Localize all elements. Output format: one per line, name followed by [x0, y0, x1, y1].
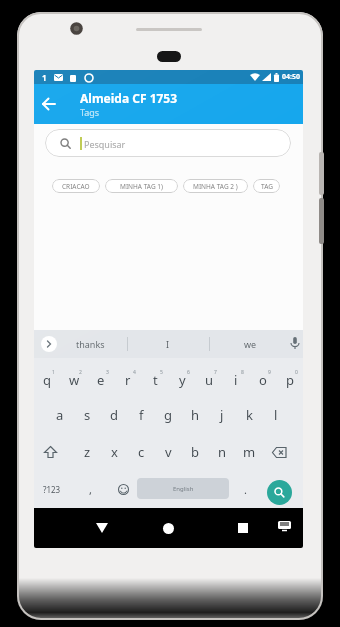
staticText: t: [153, 371, 158, 389]
button[interactable]: v: [157, 439, 179, 465]
staticText: e: [97, 371, 105, 389]
button[interactable]: u: [198, 367, 220, 393]
button[interactable]: [264, 439, 294, 465]
staticText: 0: [295, 369, 298, 376]
button[interactable]: t: [144, 367, 166, 393]
staticText: 1: [52, 369, 55, 376]
button[interactable]: [112, 476, 134, 502]
staticText: r: [125, 371, 131, 389]
button[interactable]: [90, 516, 114, 540]
staticText: a: [56, 406, 64, 424]
button[interactable]: h: [184, 402, 206, 428]
button[interactable]: a: [49, 402, 71, 428]
staticText: 3: [106, 369, 109, 376]
button[interactable]: ,: [82, 476, 98, 502]
button[interactable]: MINHA TAG 1): [105, 179, 178, 193]
staticText: 2: [79, 369, 82, 376]
button[interactable]: [41, 336, 57, 352]
button[interactable]: f: [130, 402, 152, 428]
button[interactable]: b: [184, 439, 206, 465]
button[interactable]: we: [244, 338, 257, 350]
button[interactable]: p: [279, 367, 301, 393]
staticText: b: [191, 443, 199, 461]
staticText: 5: [160, 369, 163, 376]
staticText: Tags: [80, 106, 100, 118]
button[interactable]: k: [238, 402, 260, 428]
button[interactable]: [38, 439, 62, 465]
button[interactable]: I: [166, 338, 170, 350]
button[interactable]: q: [36, 367, 58, 393]
staticText: m: [243, 443, 256, 461]
staticText: o: [259, 371, 267, 389]
button[interactable]: MINHA TAG 2 ): [183, 179, 248, 193]
button[interactable]: c: [130, 439, 152, 465]
staticText: ,: [89, 482, 92, 497]
staticText: ?123: [43, 484, 61, 495]
button[interactable]: Pesquisar: [45, 129, 291, 157]
button[interactable]: [231, 516, 255, 540]
staticText: Almeida CF 1753: [80, 90, 178, 106]
button[interactable]: ?123: [36, 476, 68, 502]
staticText: 9: [268, 369, 271, 376]
staticText: k: [246, 406, 253, 424]
button[interactable]: d: [103, 402, 125, 428]
button[interactable]: g: [157, 402, 179, 428]
staticText: v: [165, 443, 172, 461]
staticText: l: [274, 406, 278, 424]
staticText: x: [111, 443, 118, 461]
staticText: y: [179, 371, 186, 389]
staticText: g: [164, 406, 172, 424]
button[interactable]: [156, 516, 180, 540]
button[interactable]: z: [76, 439, 98, 465]
staticText: w: [69, 371, 80, 389]
staticText: TAG: [261, 182, 273, 191]
staticText: z: [84, 443, 91, 461]
button[interactable]: r: [117, 367, 139, 393]
button[interactable]: o: [252, 367, 274, 393]
staticText: 8: [241, 369, 244, 376]
button[interactable]: TAG: [253, 179, 280, 193]
staticText: 6: [187, 369, 190, 376]
staticText: 7: [214, 369, 217, 376]
staticText: MINHA TAG 1): [120, 182, 163, 191]
staticText: q: [43, 371, 51, 389]
button[interactable]: [34, 84, 64, 124]
button[interactable]: e: [90, 367, 112, 393]
button[interactable]: i: [225, 367, 247, 393]
staticText: j: [220, 406, 224, 424]
button[interactable]: s: [76, 402, 98, 428]
button[interactable]: [267, 480, 292, 505]
button[interactable]: w: [63, 367, 85, 393]
button[interactable]: m: [238, 439, 260, 465]
staticText: .: [244, 482, 247, 497]
staticText: 1: [42, 72, 47, 83]
staticText: Pesquisar: [84, 138, 126, 150]
button[interactable]: .: [237, 476, 253, 502]
staticText: c: [138, 443, 145, 461]
button[interactable]: thanks: [76, 338, 105, 350]
staticText: 4: [133, 369, 136, 376]
staticText: MINHA TAG 2 ): [193, 182, 238, 191]
button[interactable]: n: [211, 439, 233, 465]
button[interactable]: j: [211, 402, 233, 428]
staticText: s: [84, 406, 91, 424]
button[interactable]: l: [265, 402, 287, 428]
staticText: English: [173, 485, 194, 493]
staticText: f: [139, 406, 144, 424]
staticText: u: [205, 371, 214, 389]
staticText: CRIACAO: [62, 182, 90, 191]
button[interactable]: CRIACAO: [52, 179, 100, 193]
staticText: p: [286, 371, 294, 389]
button[interactable]: y: [171, 367, 193, 393]
staticText: 04:50: [282, 72, 300, 82]
staticText: i: [234, 371, 238, 389]
staticText: n: [218, 443, 227, 461]
staticText: h: [191, 406, 200, 424]
staticText: d: [110, 406, 118, 424]
button[interactable]: x: [103, 439, 125, 465]
button[interactable]: [275, 518, 293, 534]
button[interactable]: English: [137, 478, 229, 499]
